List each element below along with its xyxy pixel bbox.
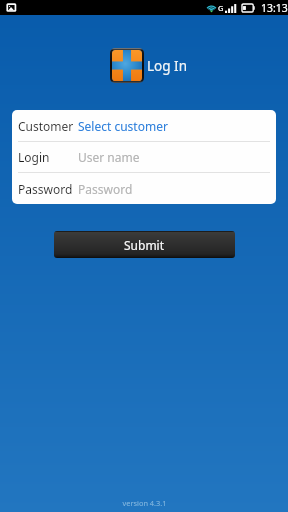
staticText: G [218,3,224,13]
staticText: Submit [124,237,165,253]
staticText: Customer [18,118,74,134]
button[interactable]: Submit [54,231,235,258]
other: App logo [112,50,142,81]
staticText: Login [18,149,50,165]
button[interactable]: Login [12,142,276,172]
staticText: Password [78,181,133,197]
staticText: Select customer [78,118,168,134]
button[interactable]: Customer [12,110,276,141]
other: Image notification [4,0,19,15]
staticText: User name [78,149,140,165]
staticText: Password [18,181,73,197]
staticText: 13:13 [261,1,288,15]
staticText: version 4.3.1 [122,498,167,508]
button[interactable]: Password [12,173,276,204]
staticText: Log In [147,57,187,75]
